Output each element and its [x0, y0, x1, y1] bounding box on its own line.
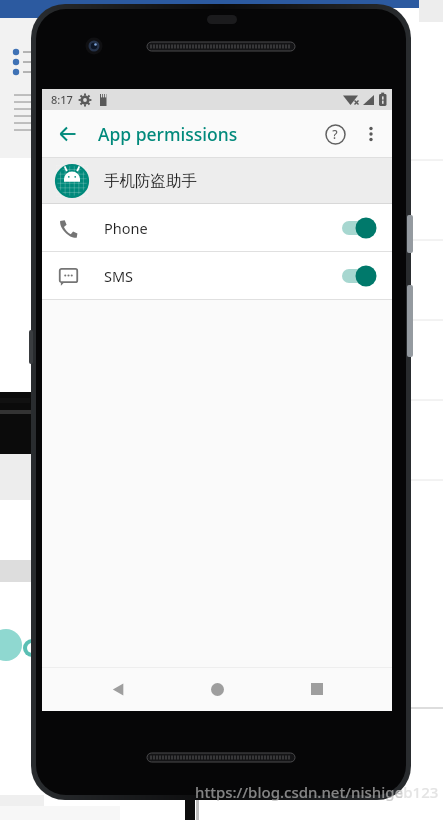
button[interactable]: Home — [193, 667, 241, 711]
button[interactable]: Phone — [42, 204, 392, 251]
staticText: App permissions — [98, 122, 238, 146]
staticText: Phone — [104, 218, 148, 238]
button[interactable]: Help — [316, 115, 354, 153]
button[interactable]: Recents — [293, 667, 341, 711]
staticText: ? — [332, 126, 338, 142]
button[interactable]: Toggle — [340, 216, 378, 240]
button[interactable]: More options — [354, 117, 388, 151]
staticText: https://blog.csdn.net/nishige — [195, 782, 404, 802]
staticText: SMS — [104, 266, 134, 286]
button[interactable]: Back — [48, 114, 88, 154]
staticText: 8:17 — [51, 92, 73, 107]
staticText: 手机防盗助手 — [104, 171, 197, 191]
staticText: sb123 — [396, 782, 439, 802]
button[interactable]: Back — [94, 667, 142, 711]
button[interactable]: Toggle — [340, 264, 378, 288]
button[interactable]: 手机防盗助手 — [42, 157, 392, 204]
button[interactable]: SMS — [42, 252, 392, 299]
